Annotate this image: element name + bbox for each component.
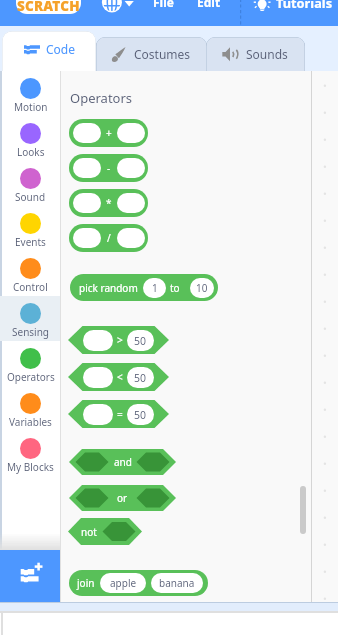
staticText: > (117, 333, 123, 347)
button[interactable]: Events (0, 206, 61, 251)
staticText: not (81, 525, 97, 539)
button[interactable]: Language (100, 0, 136, 14)
button[interactable]: Scratch home (16, 0, 81, 14)
staticText: Events (15, 235, 46, 249)
staticText: < (117, 370, 123, 384)
staticText: - (107, 161, 111, 175)
button[interactable]: pick random (70, 274, 218, 301)
button[interactable]: = (68, 400, 169, 428)
staticText: SCRATCH (17, 0, 80, 15)
staticText: pick random (79, 281, 138, 295)
staticText: * (106, 196, 112, 210)
staticText: Operators (70, 89, 133, 107)
staticText: or (117, 491, 128, 505)
button[interactable]: not (68, 518, 142, 545)
button[interactable]: Sounds (206, 37, 305, 71)
staticText: / (107, 231, 111, 245)
button[interactable]: + (69, 119, 148, 147)
staticText: 1 (152, 281, 158, 295)
staticText: 10 (196, 281, 208, 295)
button[interactable]: Tutorials (250, 0, 272, 13)
button[interactable]: Sensing (0, 296, 61, 341)
staticText: Sensing (12, 325, 50, 339)
staticText: 50 (134, 371, 147, 385)
staticText: Sound (15, 190, 46, 204)
button[interactable]: Operators (0, 341, 61, 386)
staticText: 50 (134, 408, 147, 422)
staticText: join (77, 576, 95, 590)
staticText: Control (13, 280, 48, 294)
button[interactable]: Costumes (96, 37, 207, 71)
staticText: to (170, 281, 180, 295)
staticText: Variables (9, 415, 52, 429)
button[interactable]: Tutorials (276, 0, 333, 11)
button[interactable]: Looks (0, 116, 61, 161)
staticText: 50 (134, 334, 147, 348)
button[interactable]: or (69, 485, 176, 511)
staticText: Operators (7, 370, 55, 384)
button[interactable]: Code (2, 31, 96, 71)
staticText: Sounds (246, 46, 288, 62)
button[interactable]: Motion (0, 71, 61, 116)
button[interactable]: join (69, 570, 208, 596)
staticText: banana (159, 576, 195, 590)
button[interactable]: Edit (197, 0, 221, 10)
staticText: Looks (17, 145, 45, 159)
staticText: = (117, 407, 123, 421)
staticText: File (153, 0, 174, 10)
button[interactable]: * (69, 189, 148, 217)
staticText: Motion (14, 100, 48, 114)
button[interactable]: Add Extension (0, 550, 61, 603)
button[interactable]: > (68, 326, 169, 354)
staticText: + (106, 126, 112, 140)
staticText: apple (110, 576, 137, 590)
staticText: Code (46, 41, 75, 57)
button[interactable]: File (153, 0, 174, 10)
staticText: Edit (197, 0, 221, 10)
button[interactable]: Sound (0, 161, 61, 206)
button[interactable]: My Blocks (0, 431, 61, 476)
button[interactable]: / (69, 224, 148, 252)
button[interactable]: < (68, 363, 169, 391)
button[interactable]: Control (0, 251, 61, 296)
button[interactable]: Variables (0, 386, 61, 431)
button[interactable]: and (69, 449, 176, 475)
staticText: My Blocks (7, 460, 54, 474)
button[interactable]: - (69, 154, 148, 182)
staticText: and (114, 455, 132, 469)
staticText: Costumes (134, 46, 191, 62)
